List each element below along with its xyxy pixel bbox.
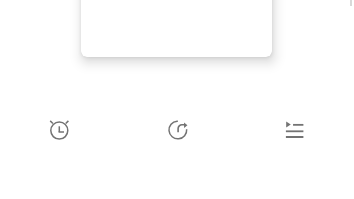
button[interactable]: Alarm	[0, 109, 118, 153]
button[interactable]: Timer	[118, 109, 236, 153]
button[interactable]: Playlist	[236, 109, 354, 153]
